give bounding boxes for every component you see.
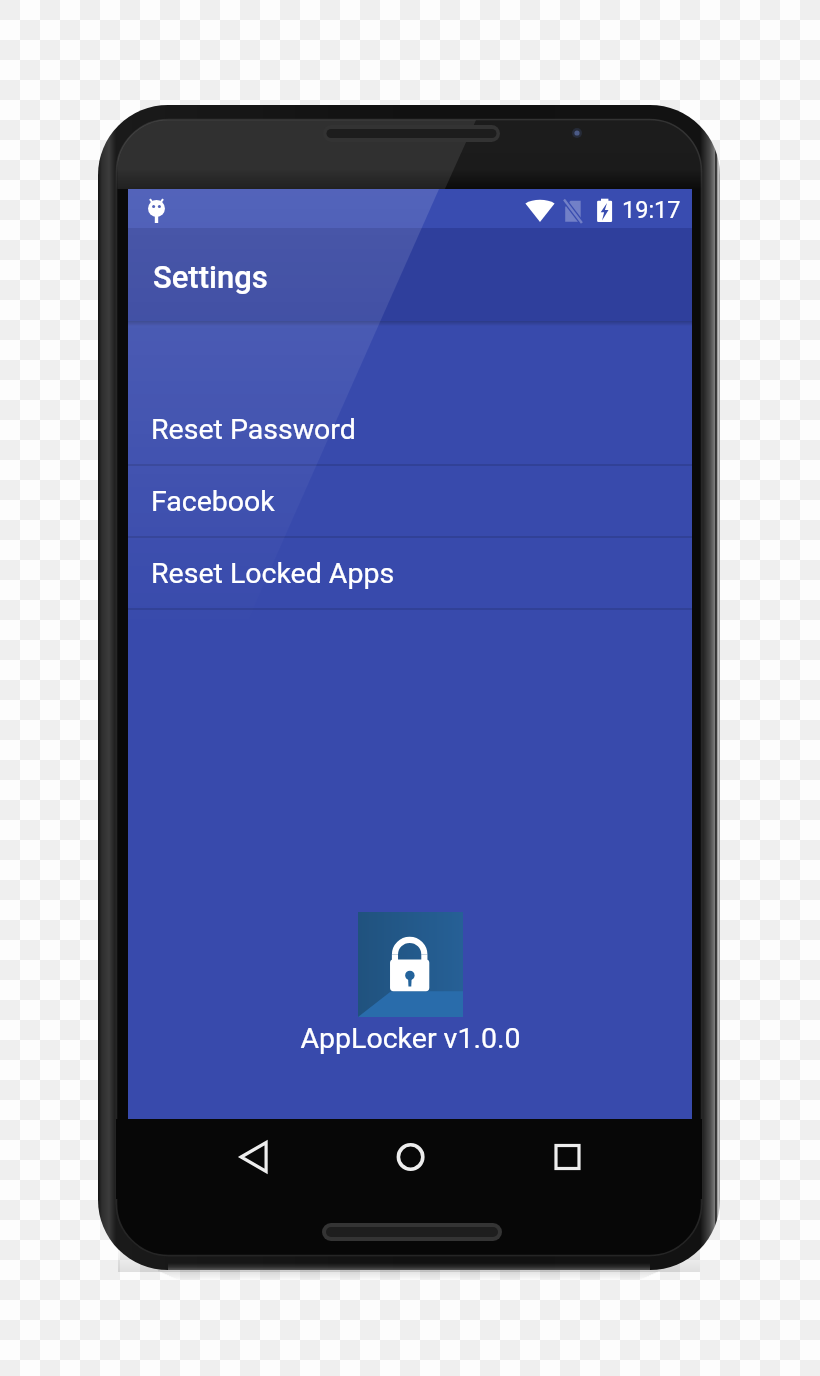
button[interactable]: Reset Locked Apps bbox=[128, 538, 692, 610]
staticText: 19:17 bbox=[622, 196, 681, 224]
button[interactable]: Home bbox=[373, 1119, 449, 1195]
staticText: AppLocker v1.0.0 bbox=[300, 1022, 521, 1055]
staticText: Settings bbox=[153, 259, 268, 295]
staticText: Reset Locked Apps bbox=[151, 557, 395, 590]
button[interactable]: Recent apps bbox=[530, 1119, 606, 1195]
button[interactable]: Reset Password bbox=[128, 394, 692, 466]
button[interactable]: Back bbox=[216, 1119, 292, 1195]
button[interactable]: Facebook bbox=[128, 466, 692, 538]
staticText: Reset Password bbox=[151, 413, 356, 446]
staticText: Facebook bbox=[151, 485, 275, 518]
